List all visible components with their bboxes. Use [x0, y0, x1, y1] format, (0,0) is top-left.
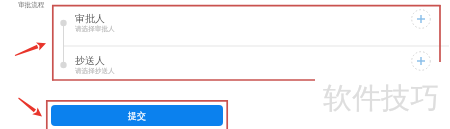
staticText: 请选择审批人: [75, 25, 115, 33]
staticText: 提交: [128, 110, 146, 121]
staticText: 软件技巧: [323, 80, 439, 117]
button[interactable]: 提交: [51, 105, 223, 126]
staticText: 抄送人: [75, 54, 105, 67]
button[interactable]: 审批人: [53, 4, 439, 45]
button[interactable]: 抄送人: [53, 46, 439, 87]
staticText: 审批流程: [18, 1, 45, 9]
button[interactable]: Add approver: [409, 49, 433, 73]
button[interactable]: Add approver: [409, 7, 433, 31]
staticText: 审批人: [75, 12, 105, 25]
staticText: 请选择抄送人: [75, 67, 115, 75]
